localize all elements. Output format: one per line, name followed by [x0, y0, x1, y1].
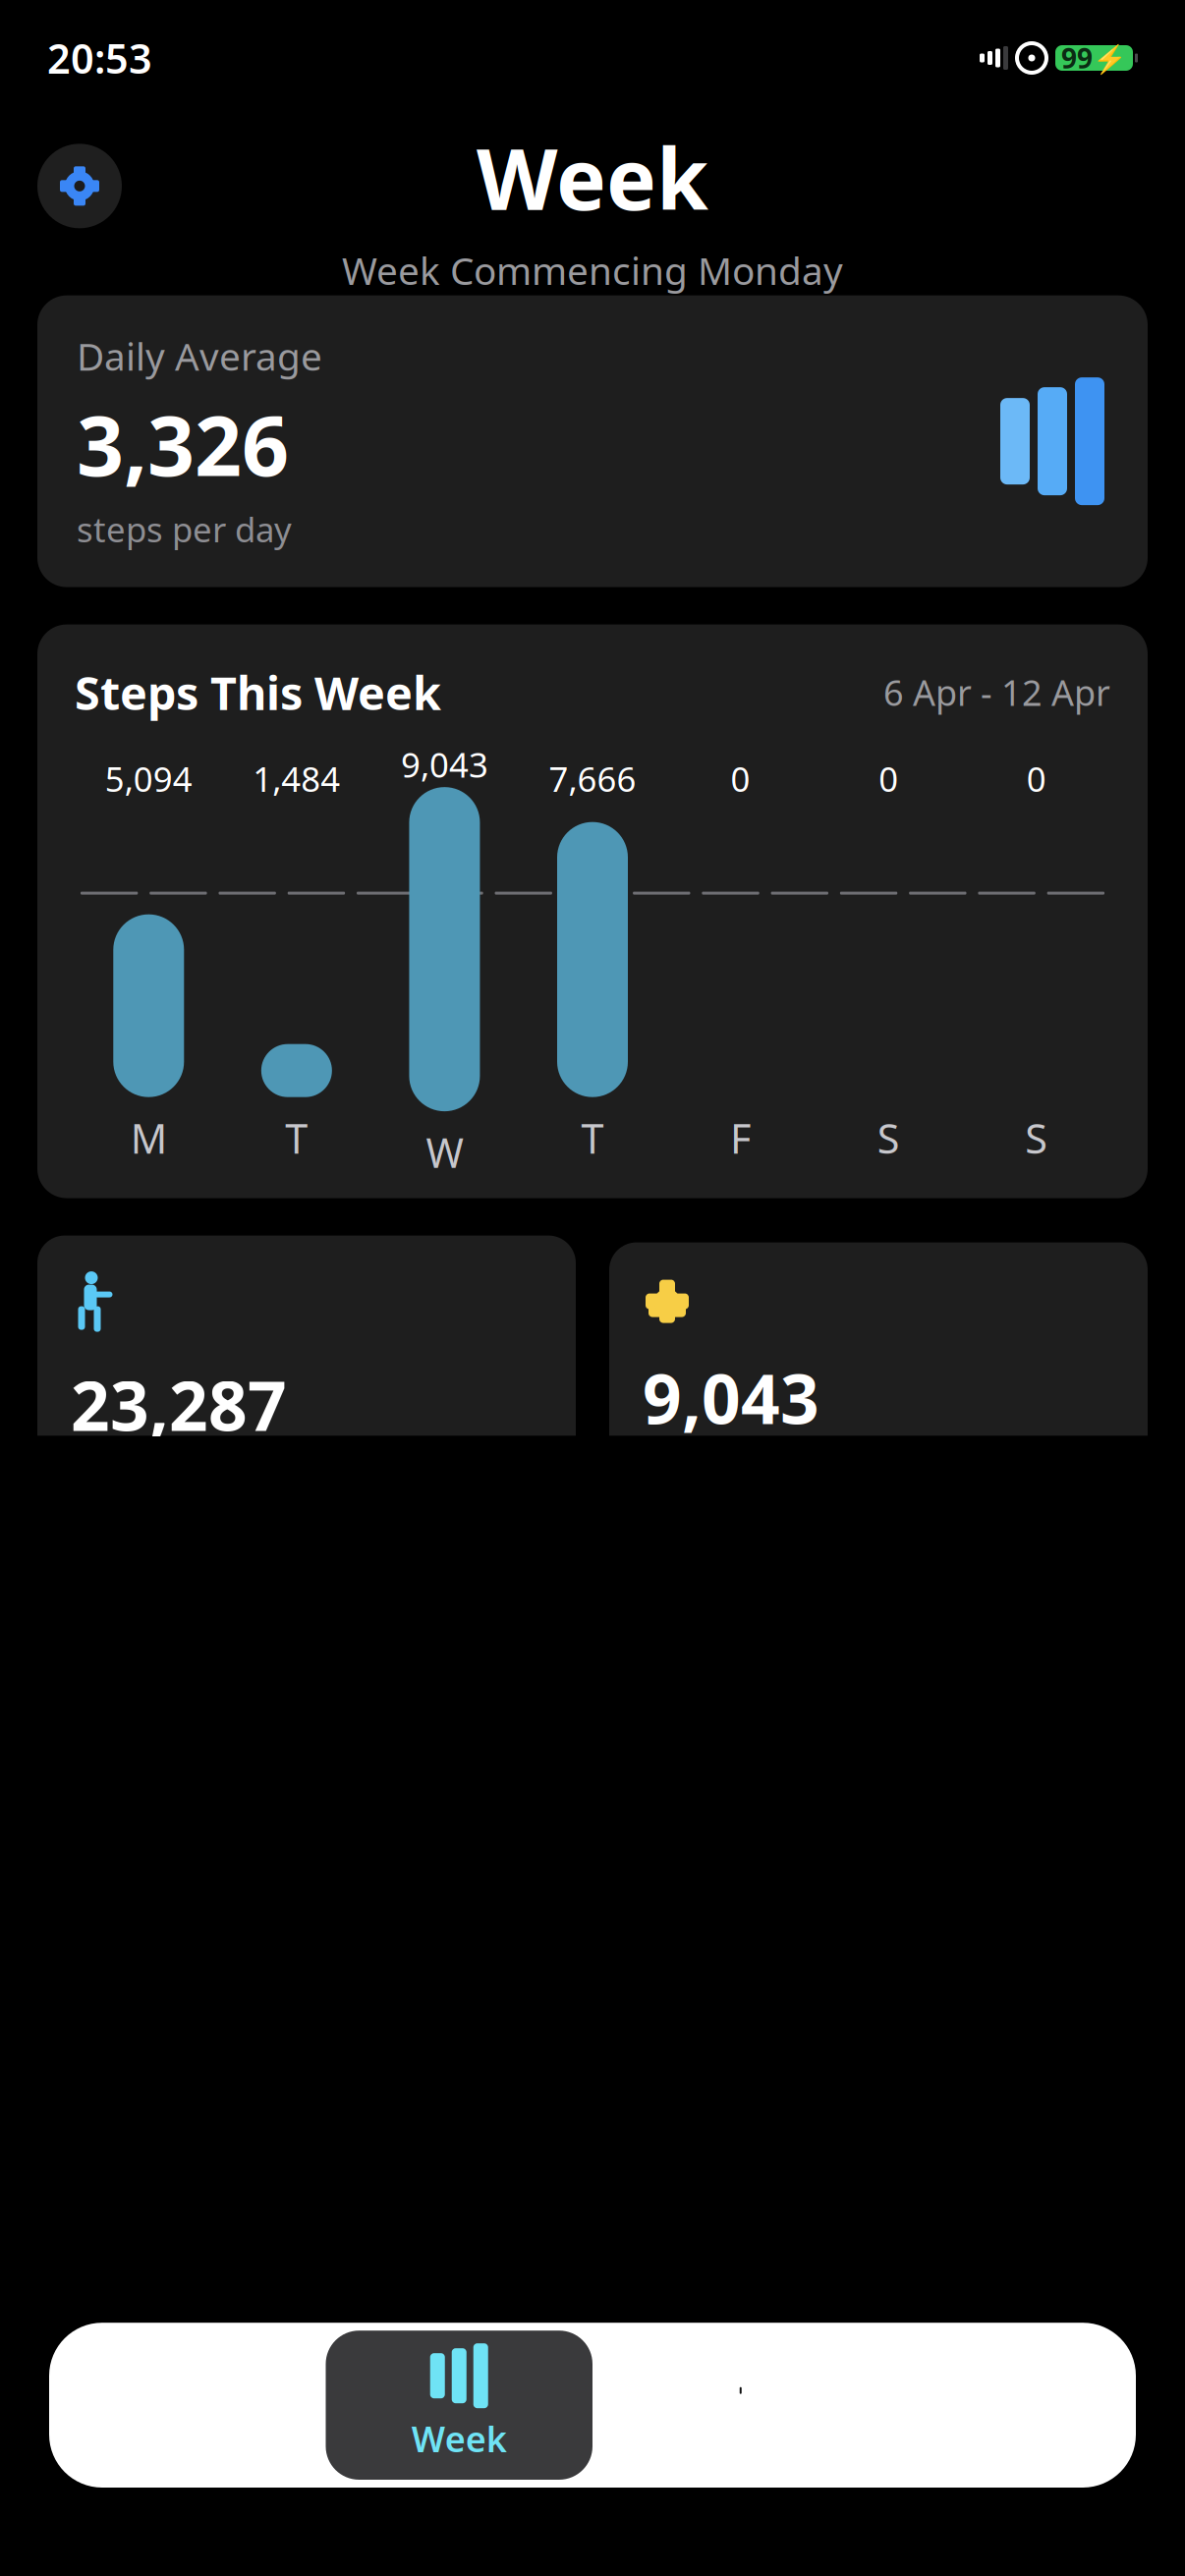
staticText: 20:53 [47, 31, 152, 85]
staticText: 9,043 [401, 742, 488, 787]
staticText: 5,094 [105, 756, 192, 801]
staticText: S [1025, 1111, 1048, 1165]
button[interactable]: 23,287 [37, 1236, 576, 1552]
staticText: 99⚡ [1061, 40, 1127, 76]
staticText: 1,484 [253, 756, 340, 801]
staticText: 0 [731, 756, 750, 801]
button[interactable]: Month [592, 2331, 859, 2480]
button[interactable]: Insights [859, 2331, 1126, 2480]
staticText: steps per day [77, 507, 292, 552]
button[interactable]: Settings [37, 144, 122, 228]
staticText: 3,326 [77, 389, 289, 499]
staticText: 23,287 [71, 1359, 287, 1450]
staticText: Week [477, 122, 708, 233]
staticText: S [877, 1111, 900, 1165]
staticText: Steps This Week [75, 662, 441, 723]
button[interactable]: Week [326, 2331, 592, 2480]
staticText: 6 Apr - 12 Apr [883, 669, 1110, 716]
button[interactable]: Daily Average [37, 295, 1148, 587]
staticText: F [730, 1111, 751, 1165]
button[interactable]: Steps This Week [37, 624, 1148, 1198]
staticText: 7,666 [549, 756, 636, 801]
staticText: T [581, 1111, 604, 1165]
staticText: 0 [1027, 756, 1046, 801]
staticText: M [130, 1111, 167, 1165]
staticText: 9,043 [643, 1352, 819, 1443]
staticText: Week Commencing Monday [342, 245, 843, 295]
staticText: W [426, 1125, 463, 1179]
staticText: Daily Average [77, 331, 322, 381]
staticText: T [285, 1111, 308, 1165]
staticText: 0 [879, 756, 898, 801]
button[interactable]: Today [59, 2331, 326, 2480]
staticText: Week [412, 2415, 507, 2462]
button[interactable]: 9,043 [609, 1242, 1148, 1545]
